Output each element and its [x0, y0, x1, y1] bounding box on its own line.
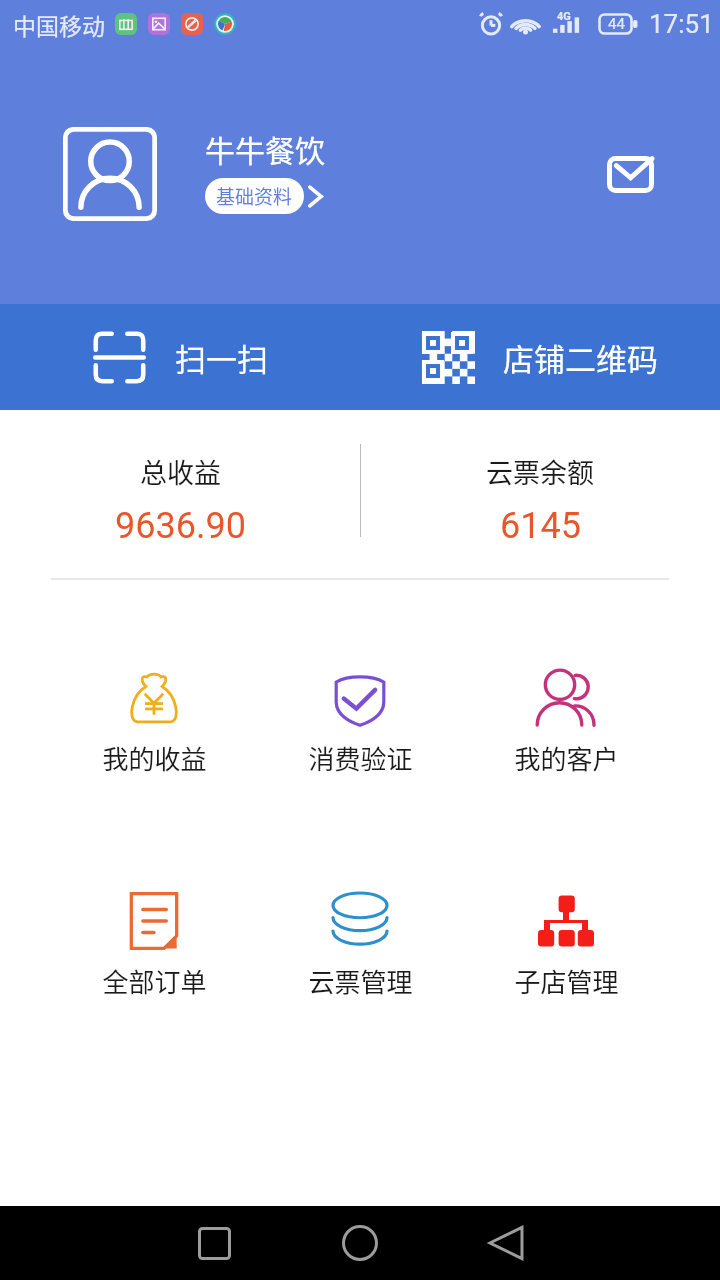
- staticText: 4G: [557, 10, 571, 23]
- staticText: 9636.90: [115, 505, 246, 547]
- button[interactable]: 基础资料: [205, 178, 304, 214]
- staticText: 我的客户: [514, 739, 619, 777]
- button[interactable]: App: [181, 13, 203, 35]
- button[interactable]: Recents: [176, 1206, 252, 1280]
- staticText: 我的收益: [102, 739, 207, 777]
- button[interactable]: App: [148, 13, 170, 35]
- staticText: 基础资料: [216, 182, 293, 210]
- button[interactable]: Messages: [607, 156, 654, 193]
- staticText: 扫一扫: [175, 335, 268, 380]
- button[interactable]: 扫一扫: [0, 304, 360, 410]
- staticText: 44: [608, 15, 625, 33]
- staticText: 中国移动: [13, 8, 105, 41]
- button[interactable]: Avatar: [63, 127, 157, 221]
- staticText: 总收益: [140, 452, 221, 491]
- button[interactable]: 全部订单: [51, 893, 257, 1000]
- button[interactable]: 总收益: [0, 410, 360, 578]
- button[interactable]: App: [115, 13, 137, 35]
- button[interactable]: 云票余额: [360, 410, 720, 578]
- button[interactable]: Home: [322, 1206, 398, 1280]
- button[interactable]: 店铺二维码: [360, 304, 720, 410]
- button[interactable]: 消费验证: [257, 670, 463, 777]
- staticText: 店铺二维码: [503, 335, 658, 380]
- button[interactable]: 子店管理: [463, 893, 669, 1000]
- staticText: 子店管理: [514, 962, 619, 1000]
- button[interactable]: 云票管理: [257, 893, 463, 1000]
- staticText: 牛牛餐饮: [205, 127, 325, 170]
- button[interactable]: App: [214, 13, 236, 35]
- staticText: 消费验证: [308, 739, 413, 777]
- staticText: 全部订单: [102, 962, 207, 1000]
- staticText: 云票管理: [308, 962, 413, 1000]
- button[interactable]: 我的客户: [463, 670, 669, 777]
- button[interactable]: Back: [468, 1206, 544, 1280]
- staticText: 6145: [500, 505, 581, 547]
- button[interactable]: 我的收益: [51, 670, 257, 777]
- staticText: 云票余额: [486, 452, 594, 491]
- staticText: 17:51: [649, 9, 714, 39]
